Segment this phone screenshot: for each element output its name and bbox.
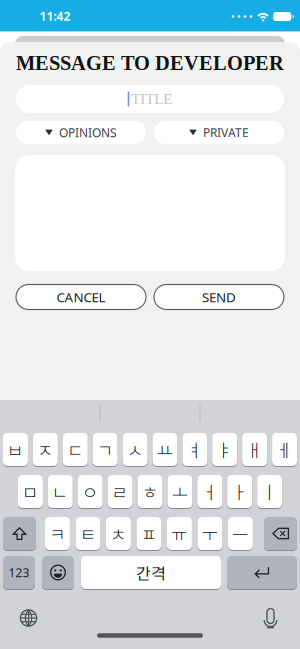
staticText: ㄷ	[67, 436, 84, 463]
staticText: TITLE	[131, 91, 172, 107]
button[interactable]: ㅕ	[182, 433, 207, 466]
button[interactable]: ㅅ	[123, 433, 147, 466]
staticText: ㅂ	[7, 436, 24, 463]
button[interactable]: CANCEL	[16, 284, 146, 309]
staticText: ㅊ	[110, 520, 127, 547]
staticText: ㅏ	[231, 478, 248, 505]
staticText: ㅜ	[201, 520, 218, 547]
staticText: ㅌ	[79, 520, 96, 547]
button[interactable]: ㅗ	[167, 475, 192, 508]
button[interactable]: ㅐ	[242, 433, 267, 466]
staticText: OPINIONS	[59, 124, 117, 140]
staticText: PRIVATE	[203, 124, 249, 140]
staticText: SEND	[202, 288, 236, 306]
button[interactable]: ㅔ	[272, 433, 297, 466]
button[interactable]: ㅛ	[152, 433, 177, 466]
button[interactable]: SEND	[154, 284, 284, 309]
button[interactable]: Shift	[3, 517, 36, 550]
button[interactable]: ㅊ	[106, 517, 131, 550]
button[interactable]: PRIVATE	[154, 121, 284, 144]
button[interactable]: ㅡ	[228, 517, 253, 550]
staticText: ㄹ	[112, 478, 129, 505]
button[interactable]: ㅁ	[18, 475, 43, 508]
staticText: ㅋ	[49, 520, 66, 547]
button[interactable]: ㅑ	[212, 433, 237, 466]
button[interactable]: ㅋ	[45, 517, 70, 550]
staticText: CANCEL	[56, 288, 105, 306]
button[interactable]: ㅣ	[257, 475, 282, 508]
staticText: ㅕ	[186, 436, 203, 463]
button[interactable]: ㅠ	[167, 517, 192, 550]
staticText: MESSAGE TO DEVELOPER	[16, 52, 284, 74]
button[interactable]: ㅇ	[78, 475, 103, 508]
button[interactable]: ㅎ	[138, 475, 162, 508]
staticText: ㅈ	[37, 436, 54, 463]
button[interactable]: Emoji	[42, 556, 74, 589]
staticText: ㅍ	[140, 520, 157, 547]
staticText: ㅡ	[232, 520, 249, 547]
button[interactable]: ㅌ	[75, 517, 100, 550]
button[interactable]: Next keyboard	[19, 609, 37, 627]
staticText: ㅠ	[171, 520, 188, 547]
button[interactable]: Title	[16, 85, 284, 113]
button[interactable]: ㄷ	[63, 433, 88, 466]
button[interactable]: ㅍ	[136, 517, 161, 550]
staticText: 간격	[136, 561, 166, 584]
button[interactable]: ㅏ	[227, 475, 252, 508]
button[interactable]: 123	[3, 556, 35, 589]
staticText: ㅑ	[216, 436, 233, 463]
staticText: 11:42	[39, 8, 70, 24]
button[interactable]: ㅈ	[33, 433, 58, 466]
staticText: ㄱ	[97, 436, 114, 463]
button[interactable]: ㅂ	[3, 433, 28, 466]
button[interactable]: ㄴ	[48, 475, 73, 508]
staticText: ㅅ	[126, 436, 143, 463]
button[interactable]: Return	[227, 556, 297, 589]
staticText: 123	[8, 564, 29, 580]
staticText: ㅁ	[22, 478, 39, 505]
button[interactable]: Delete	[264, 517, 297, 550]
button[interactable]: ㄱ	[93, 433, 118, 466]
button[interactable]: OPINIONS	[16, 121, 146, 144]
staticText: ㅔ	[276, 436, 293, 463]
button[interactable]: Dictate	[263, 608, 277, 629]
button[interactable]: ㅓ	[197, 475, 222, 508]
staticText: ㄴ	[52, 478, 69, 505]
staticText: ㅣ	[261, 478, 278, 505]
button[interactable]: ㄹ	[108, 475, 132, 508]
button[interactable]: 간격	[81, 556, 221, 589]
staticText: ㅓ	[201, 478, 218, 505]
button[interactable]: ㅜ	[197, 517, 222, 550]
staticText: ㅗ	[171, 478, 188, 505]
staticText: ㅛ	[156, 436, 173, 463]
staticText: ㅎ	[141, 478, 158, 505]
staticText: ㅐ	[246, 436, 263, 463]
staticText: ㅇ	[82, 478, 99, 505]
